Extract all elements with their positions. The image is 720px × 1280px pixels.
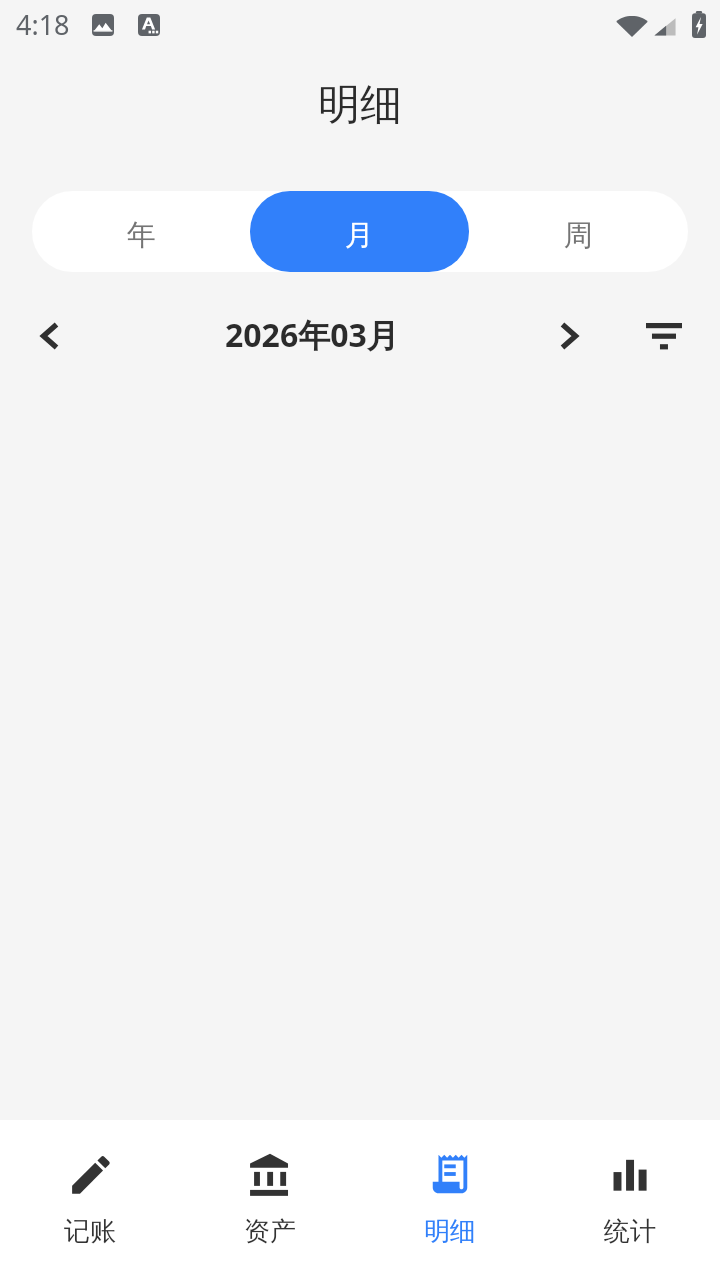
button[interactable]: 统计 — [540, 1120, 720, 1280]
staticText: 资产 — [244, 1215, 296, 1248]
button[interactable]: 明细 — [360, 1120, 540, 1280]
button[interactable]: 年 — [32, 191, 250, 272]
button[interactable]: 资产 — [180, 1120, 360, 1280]
staticText: 明细 — [318, 79, 402, 132]
button[interactable]: Previous period — [0, 301, 95, 363]
staticText: 月 — [345, 217, 374, 254]
staticText: 4:18 — [16, 6, 70, 43]
staticText: 2026年03月 — [225, 313, 399, 357]
button[interactable]: 周 — [469, 191, 688, 272]
button[interactable]: Filter — [603, 301, 720, 363]
staticText: 年 — [127, 217, 156, 254]
staticText: 统计 — [604, 1215, 656, 1248]
button[interactable]: 月 — [250, 191, 469, 272]
button[interactable]: Next period — [529, 301, 603, 363]
staticText: 明细 — [424, 1215, 476, 1248]
staticText: 记账 — [64, 1215, 116, 1248]
button[interactable]: 记账 — [0, 1120, 180, 1280]
staticText: 周 — [564, 217, 593, 254]
